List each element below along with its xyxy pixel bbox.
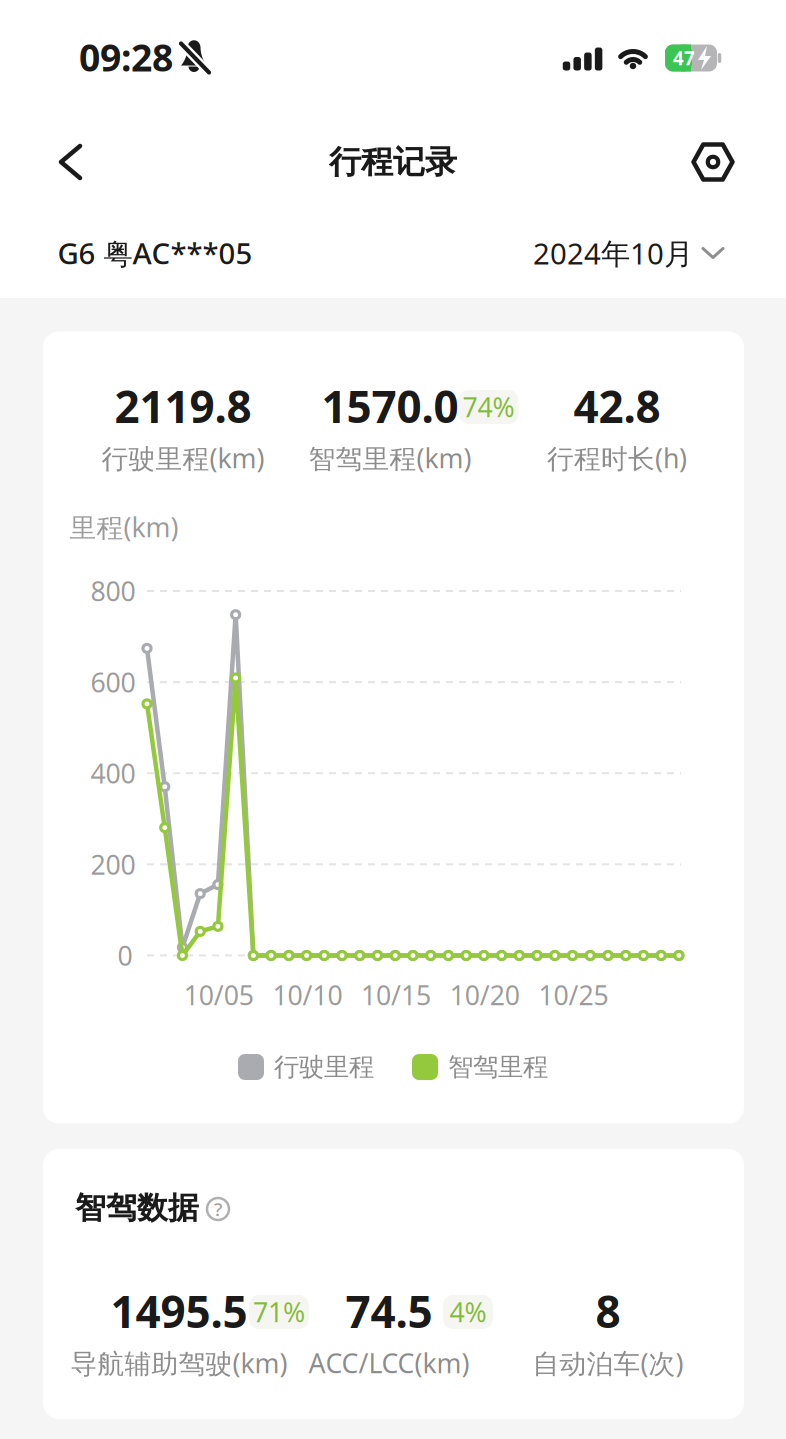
staticText: 4% — [449, 1294, 486, 1330]
staticText: 47 — [673, 46, 695, 70]
button[interactable]: About smart driving data — [196, 1188, 240, 1230]
staticText: 2024年10月 — [533, 233, 693, 272]
staticText: 1570.0 — [321, 377, 458, 435]
staticText: 0 — [117, 938, 132, 973]
staticText: 里程(km) — [69, 509, 178, 545]
staticText: 10/15 — [361, 977, 431, 1013]
staticText: ? — [214, 1197, 222, 1221]
staticText: 09:28 — [79, 32, 173, 82]
staticText: 800 — [90, 573, 135, 609]
staticText: 400 — [90, 755, 135, 791]
staticText: G6 粤AC***05 — [57, 233, 252, 272]
staticText: 智驾数据 — [75, 1189, 199, 1227]
staticText: 10/10 — [272, 977, 342, 1013]
staticText: 智驾里程 — [448, 1051, 548, 1082]
staticText: ACC/LCC(km) — [308, 1345, 469, 1381]
staticText: 74% — [462, 389, 514, 425]
staticText: 200 — [90, 847, 135, 882]
staticText: 10/05 — [184, 977, 254, 1013]
staticText: 10/25 — [538, 977, 608, 1013]
staticText: 行驶里程(km) — [101, 440, 264, 476]
staticText: 71% — [253, 1294, 305, 1330]
staticText: 智驾里程(km) — [308, 440, 471, 476]
button[interactable]: Select month — [533, 233, 725, 272]
staticText: 2119.8 — [114, 377, 251, 435]
staticText: 10/20 — [450, 977, 520, 1013]
button[interactable]: Back — [50, 141, 94, 183]
staticText: 自动泊车(次) — [532, 1345, 683, 1381]
staticText: 行程时长(h) — [547, 440, 687, 476]
staticText: 74.5 — [345, 1282, 432, 1340]
staticText: 42.8 — [573, 377, 660, 435]
staticText: 1495.5 — [110, 1282, 247, 1340]
button[interactable]: Settings — [691, 141, 735, 183]
staticText: 600 — [90, 664, 135, 700]
staticText: 导航辅助驾驶(km) — [70, 1345, 287, 1381]
staticText: 8 — [595, 1282, 620, 1340]
staticText: 行驶里程 — [274, 1051, 374, 1082]
staticText: 行程记录 — [329, 142, 457, 182]
